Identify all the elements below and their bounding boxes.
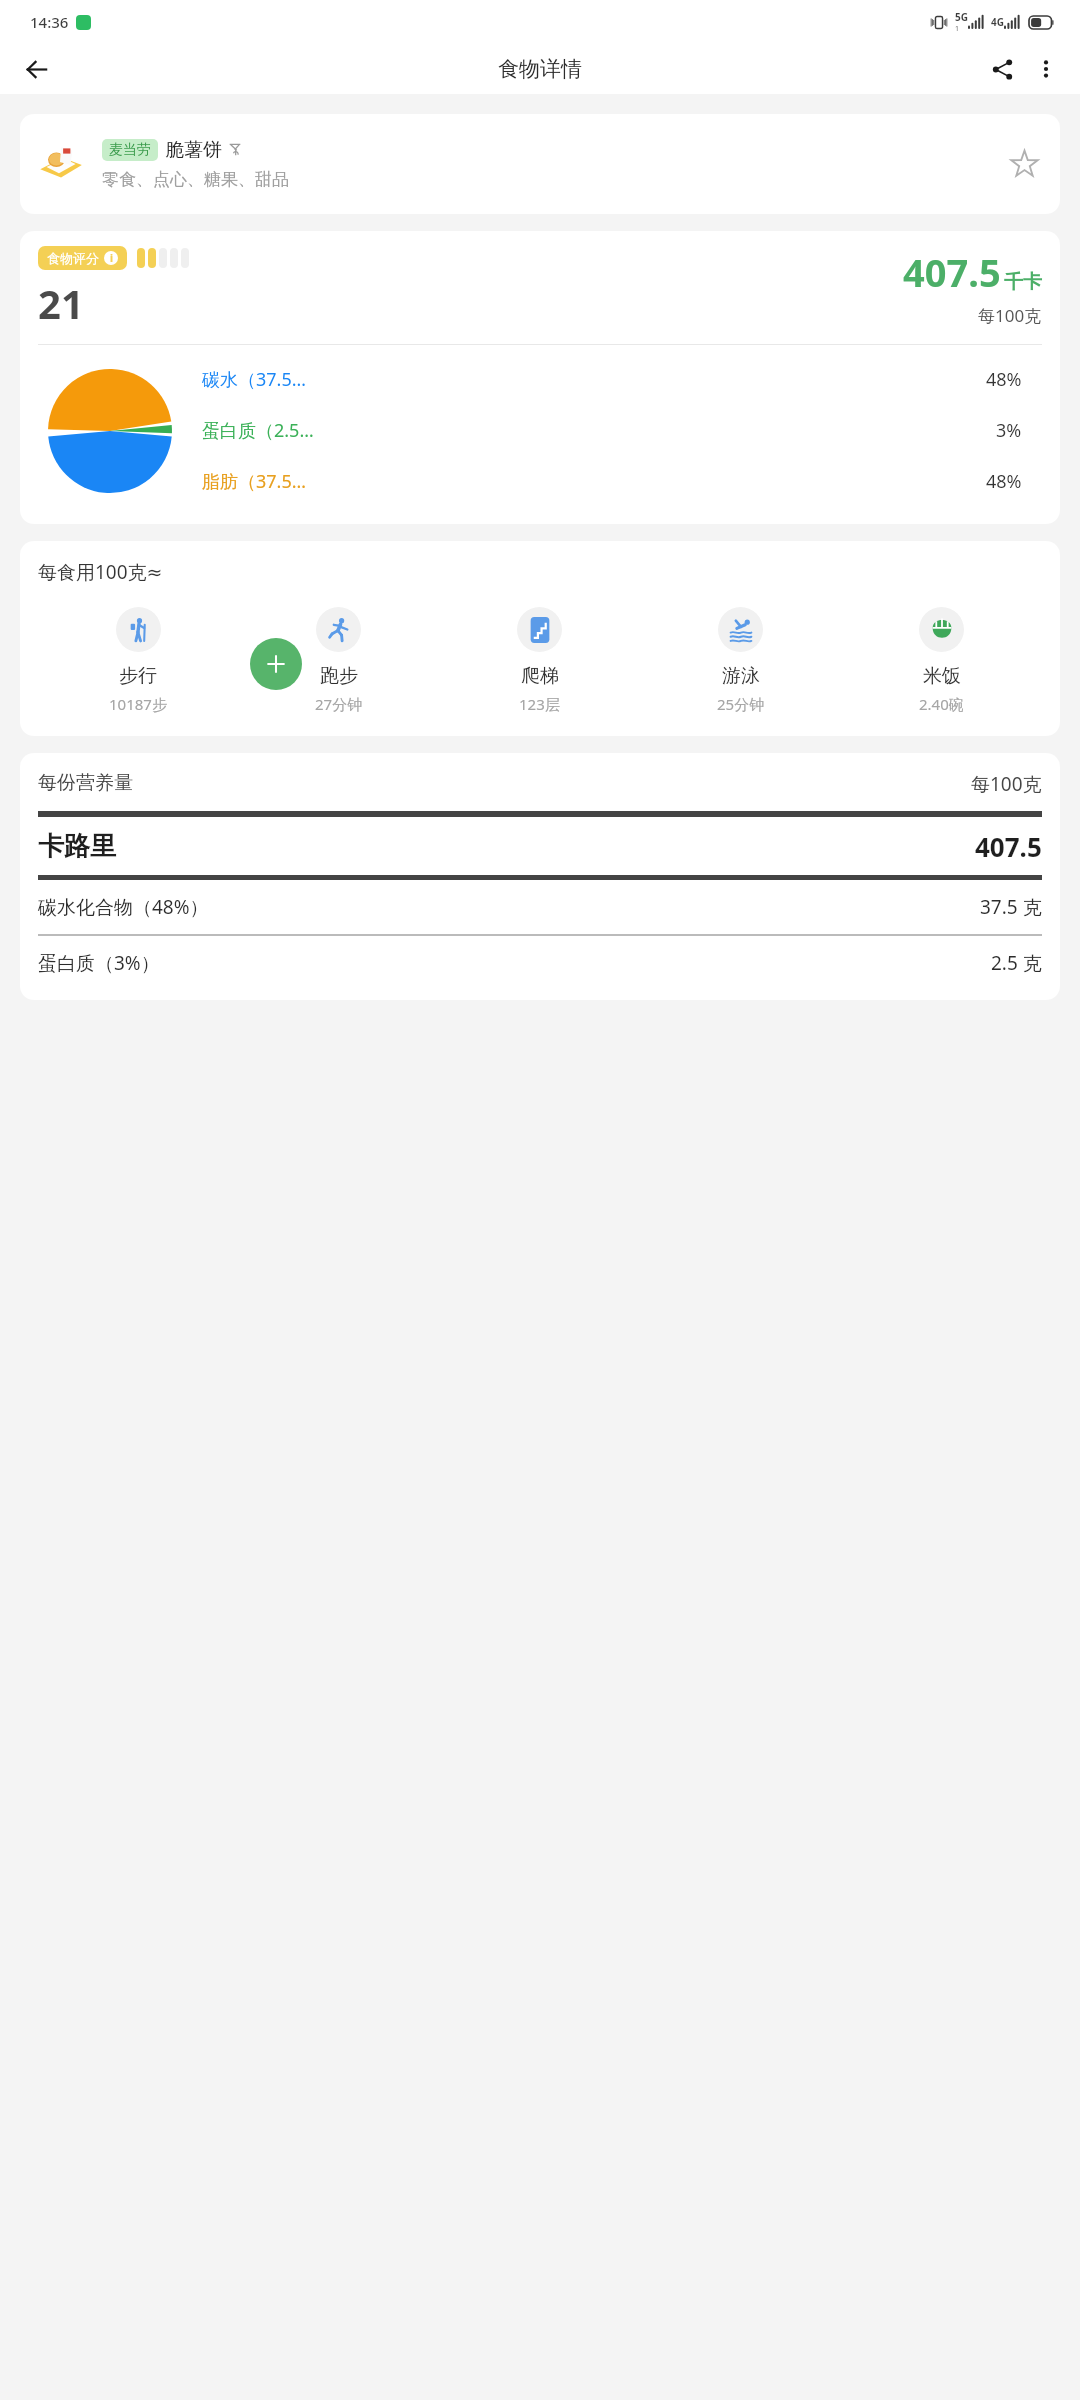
staticText: 407.5 [975, 829, 1042, 864]
staticText: 每份营养量 [38, 771, 133, 795]
button[interactable]: Favorite [1002, 142, 1046, 186]
staticText: 跑步 [320, 664, 358, 688]
staticText: 脆薯饼 [165, 138, 222, 162]
staticText: 27分钟 [315, 694, 363, 714]
staticText: 千卡 [1004, 270, 1042, 294]
staticText: 游泳 [722, 664, 760, 688]
staticText: 碳水化合物（48%） [38, 894, 209, 920]
staticText: 零食、点心、糖果、甜品 [102, 169, 289, 190]
button[interactable]: More options [1024, 47, 1068, 91]
staticText: 每食用100克≈ [38, 559, 163, 585]
staticText: 1 [955, 24, 960, 34]
staticText: 48% [986, 469, 1022, 494]
staticText: 卡路里 [38, 830, 116, 863]
staticText: 爬梯 [521, 664, 559, 688]
staticText: 每100克 [978, 304, 1042, 327]
staticText: i [110, 251, 113, 265]
staticText: 食物评分 [47, 250, 99, 266]
staticText: 碳水（37.5… [202, 367, 306, 392]
staticText: 蛋白质（2.5… [202, 418, 314, 443]
staticText: 25分钟 [717, 694, 765, 714]
button[interactable]: 爬梯 [439, 607, 640, 714]
staticText: 48% [986, 367, 1022, 392]
staticText: 5G [955, 10, 968, 24]
staticText: 步行 [119, 664, 157, 688]
staticText: 2.5 克 [991, 950, 1042, 976]
button[interactable]: Add food [250, 638, 302, 690]
button[interactable]: Back [14, 47, 58, 91]
staticText: 脂肪（37.5… [202, 469, 306, 494]
button[interactable]: 步行 [38, 607, 238, 714]
button[interactable]: 米饭 [841, 607, 1042, 714]
staticText: 123层 [519, 694, 560, 714]
staticText: 14:36 [30, 12, 69, 32]
staticText: 3% [996, 418, 1022, 443]
staticText: 4G [991, 15, 1004, 29]
button[interactable]: Share [980, 47, 1024, 91]
staticText: 2.40碗 [919, 694, 964, 714]
staticText: 麦当劳 [109, 141, 151, 159]
staticText: 食物详情 [498, 56, 582, 82]
button[interactable]: 游泳 [640, 607, 841, 714]
staticText: 21 [38, 276, 84, 330]
button[interactable]: 跑步 [238, 607, 439, 714]
button[interactable]: 食物评分 [38, 246, 127, 270]
button[interactable]: 麦当劳 [20, 114, 1060, 214]
staticText: 407.5 [903, 246, 1001, 298]
staticText: 蛋白质（3%） [38, 950, 160, 976]
staticText: 米饭 [923, 664, 961, 688]
staticText: 每100克 [971, 771, 1042, 797]
staticText: 10187步 [109, 694, 167, 714]
staticText: 37.5 克 [980, 894, 1042, 920]
